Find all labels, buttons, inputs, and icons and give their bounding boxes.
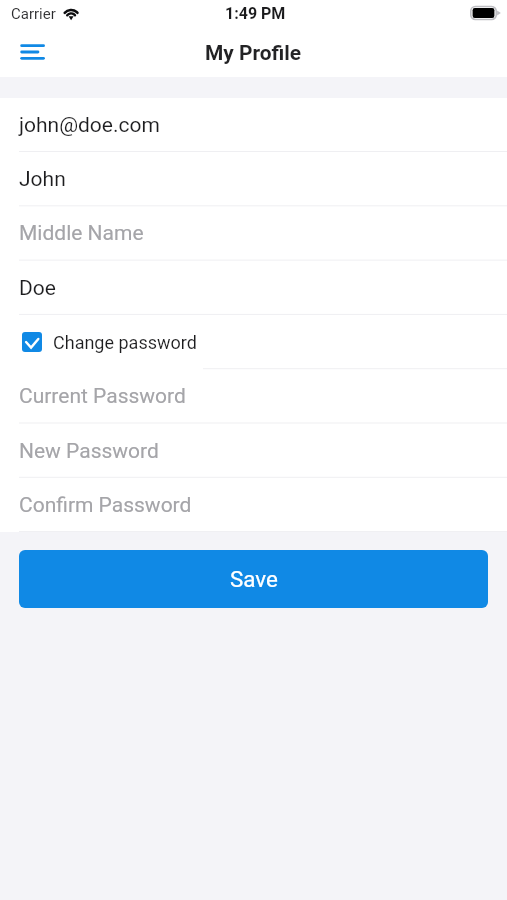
staticText: John — [19, 167, 66, 192]
staticText: john@doe.com — [19, 113, 160, 138]
button[interactable]: Confirm Password — [0, 478, 507, 532]
staticText: 1:49 PM — [225, 4, 286, 23]
staticText: Carrier — [11, 5, 56, 23]
button[interactable]: New Password — [0, 424, 507, 478]
staticText: Confirm Password — [19, 493, 192, 518]
button[interactable]: Current Password — [0, 369, 507, 423]
button[interactable]: john@doe.com — [0, 98, 507, 152]
staticText: Change password — [53, 332, 197, 353]
staticText: Doe — [19, 276, 56, 301]
button[interactable]: Open navigation menu — [6, 34, 50, 75]
button[interactable]: Save — [19, 550, 488, 608]
button[interactable]: Change password — [0, 315, 507, 369]
staticText: Current Password — [19, 384, 186, 409]
button[interactable]: Doe — [0, 261, 507, 315]
staticText: New Password — [19, 439, 159, 464]
button[interactable]: John — [0, 152, 507, 206]
staticText: Save — [230, 566, 278, 592]
staticText: My Profile — [205, 41, 302, 65]
staticText: Middle Name — [19, 221, 144, 246]
button[interactable]: Middle Name — [0, 206, 507, 260]
